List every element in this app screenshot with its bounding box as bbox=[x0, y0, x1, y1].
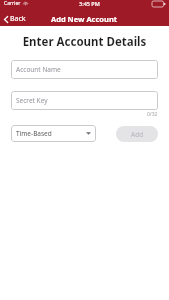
staticText: Add bbox=[131, 130, 144, 139]
button[interactable]: Time-Based bbox=[11, 125, 96, 142]
staticText: Add New Account bbox=[51, 14, 118, 24]
staticText: 3:45 PM bbox=[79, 0, 100, 7]
staticText: Back bbox=[10, 14, 26, 24]
staticText: Secret Key bbox=[16, 96, 48, 105]
staticText: Time-Based bbox=[16, 129, 52, 138]
button[interactable]: Account Name bbox=[11, 60, 158, 79]
staticText: Enter Account Details bbox=[0, 34, 169, 50]
button[interactable]: Back bbox=[0, 12, 32, 26]
button[interactable]: Secret Key bbox=[11, 91, 158, 110]
staticText: Carrier bbox=[4, 0, 21, 7]
staticText: Account Name bbox=[16, 65, 61, 74]
staticText: 0/32 bbox=[147, 111, 158, 118]
button[interactable]: Add bbox=[116, 126, 158, 142]
